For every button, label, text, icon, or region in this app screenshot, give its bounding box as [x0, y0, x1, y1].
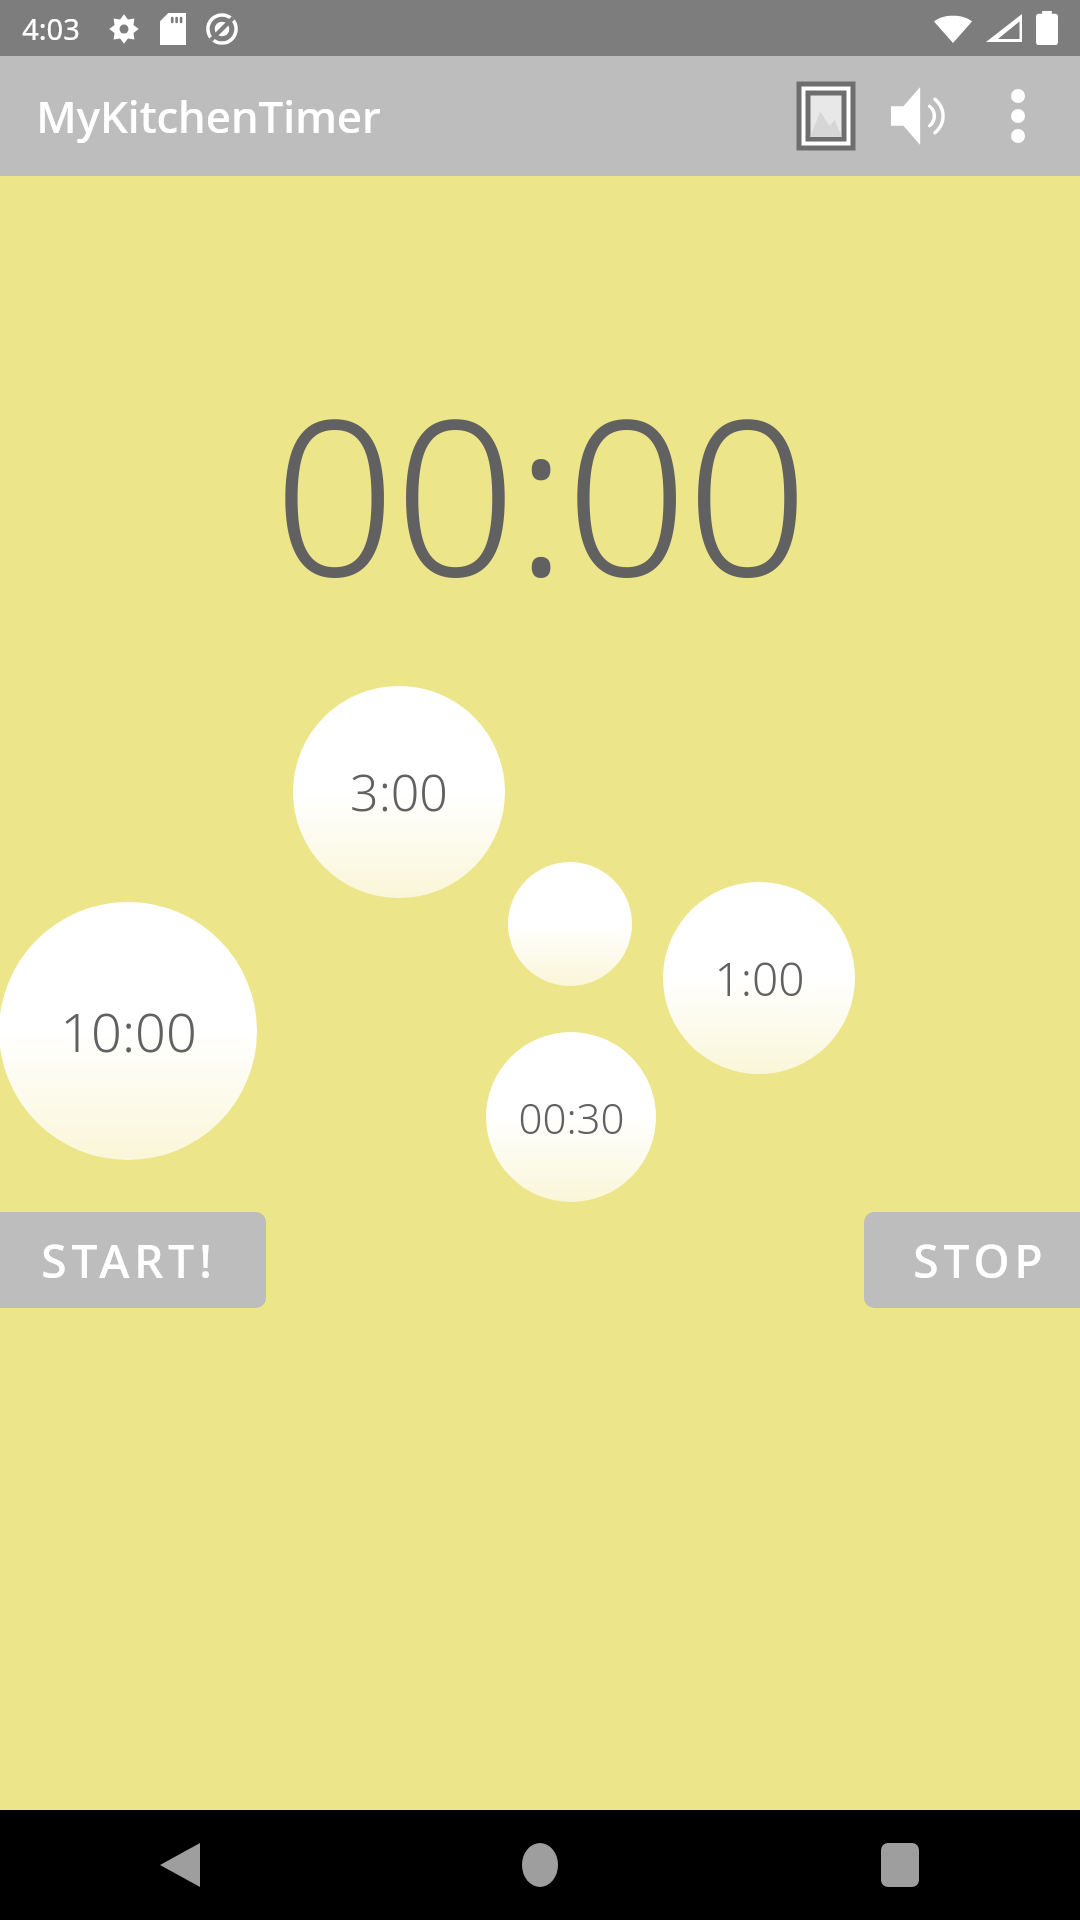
- button[interactable]: START!: [0, 1212, 266, 1308]
- button[interactable]: Sound: [874, 68, 970, 164]
- staticText: 10:00: [60, 994, 197, 1068]
- staticText: 00:00: [273, 346, 807, 639]
- button[interactable]: 3:00: [293, 686, 505, 898]
- staticText: START!: [41, 1229, 217, 1292]
- button[interactable]: Home: [360, 1810, 720, 1920]
- staticText: 4:03: [22, 9, 80, 48]
- button[interactable]: Recent apps: [720, 1810, 1080, 1920]
- button[interactable]: Back: [0, 1810, 360, 1920]
- button[interactable]: 10:00: [0, 902, 257, 1160]
- button[interactable]: STOP: [864, 1212, 1080, 1308]
- button[interactable]: [508, 862, 632, 986]
- button[interactable]: 00:30: [486, 1032, 656, 1202]
- staticText: STOP: [913, 1229, 1048, 1292]
- staticText: 00:30: [518, 1089, 625, 1146]
- staticText: 3:00: [350, 758, 448, 826]
- button[interactable]: More options: [970, 68, 1066, 164]
- staticText: 1:00: [714, 947, 805, 1010]
- staticText: MyKitchenTimer: [36, 86, 381, 146]
- button[interactable]: 1:00: [663, 882, 855, 1074]
- button[interactable]: Change background image: [778, 68, 874, 164]
